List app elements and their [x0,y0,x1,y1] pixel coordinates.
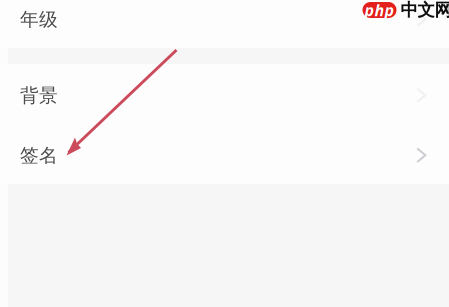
staticText: 年级 [20,8,58,31]
staticText: 背景 [20,84,58,107]
staticText: 签名 [20,144,58,167]
button[interactable]: 签名 [0,124,449,184]
staticText: php [364,0,394,21]
button[interactable]: 年级 [0,0,449,48]
button[interactable]: 背景 [0,64,449,124]
staticText: 中文网 [400,0,449,21]
